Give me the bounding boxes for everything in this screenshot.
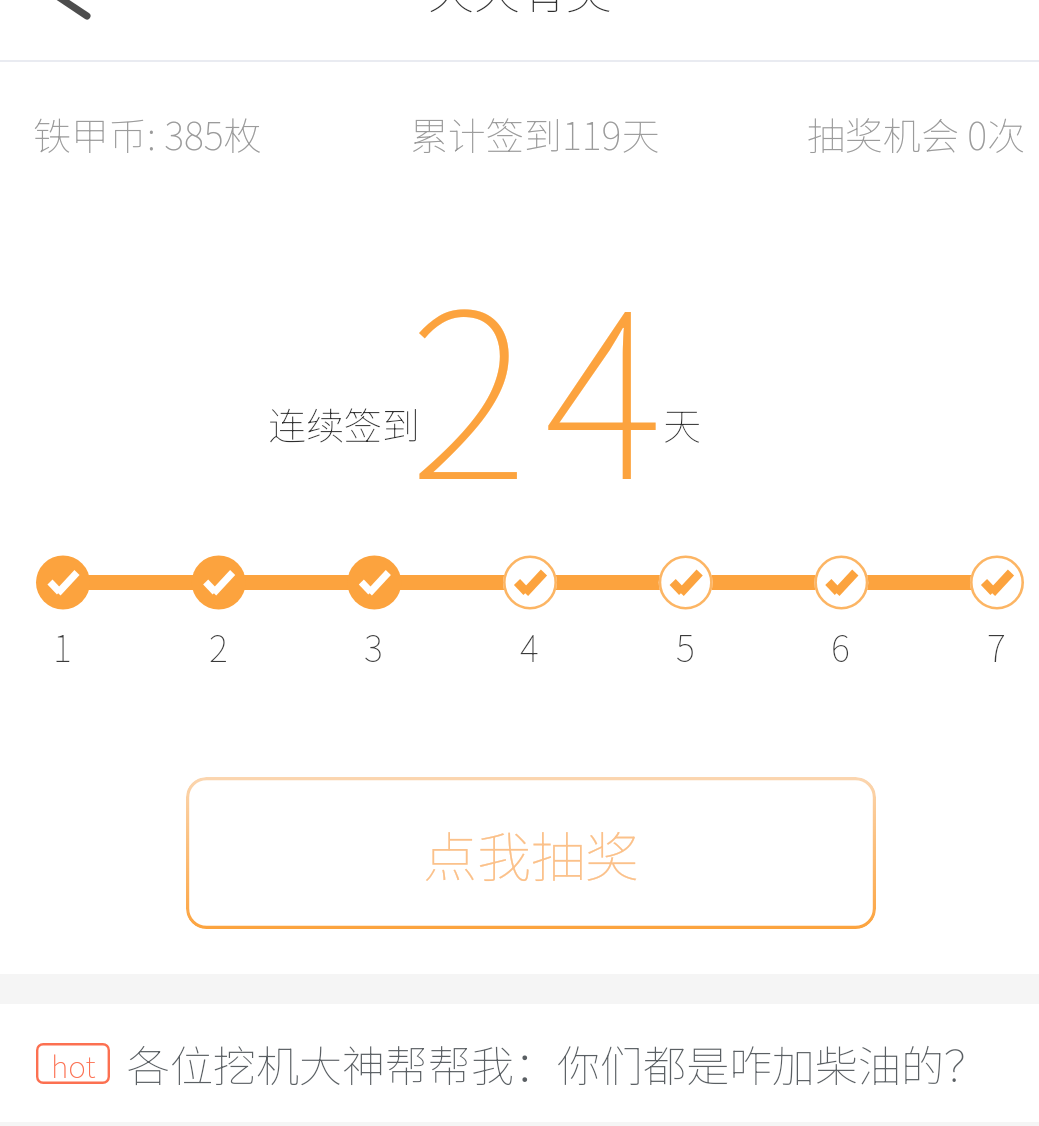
staticText: 24 xyxy=(409,213,680,545)
staticText: hot xyxy=(51,1043,96,1084)
staticText: 2 xyxy=(209,620,228,672)
staticText: 累计签到119天 xyxy=(410,106,660,161)
staticText: 连续签到 xyxy=(268,396,421,451)
button[interactable]: 点我抽奖 xyxy=(186,777,876,929)
staticText: 抽奖机会 0次 xyxy=(807,106,1026,161)
staticText: 5 xyxy=(676,620,695,672)
staticText: 7 xyxy=(987,620,1006,672)
staticText: 各位挖机大神帮帮我：你们都是咋加柴油的？ xyxy=(127,1032,987,1094)
staticText: 铁甲币: 385枚 xyxy=(33,106,262,161)
button[interactable]: Back xyxy=(20,0,96,24)
staticText: 3 xyxy=(364,620,383,672)
staticText: 6 xyxy=(831,620,850,672)
staticText: 天天有奖 xyxy=(428,0,612,23)
button[interactable]: hot xyxy=(0,1004,1039,1122)
staticText: 天 xyxy=(663,396,702,451)
staticText: 1 xyxy=(53,620,72,672)
staticText: 点我抽奖 xyxy=(423,814,639,892)
staticText: 4 xyxy=(520,620,539,672)
